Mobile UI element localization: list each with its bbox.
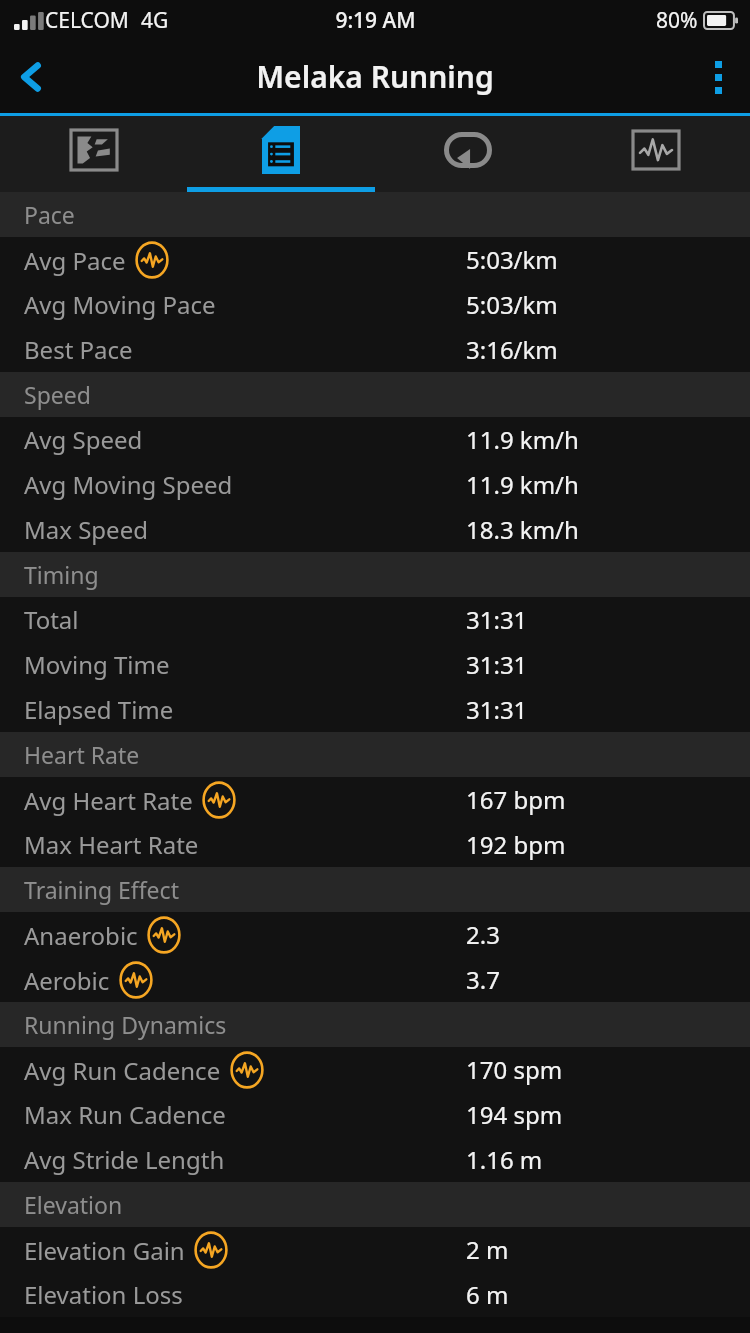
button[interactable]: Max Heart Rate xyxy=(0,822,750,867)
staticText: Melaka Running xyxy=(256,56,494,97)
staticText: 31:31 xyxy=(466,603,528,636)
button[interactable]: Elevation Gain xyxy=(0,1227,750,1272)
staticText: Avg Stride Length xyxy=(24,1143,225,1176)
staticText: Elevation Loss xyxy=(24,1278,183,1311)
staticText: 194 spm xyxy=(466,1098,563,1131)
staticText: 9:19 AM xyxy=(335,6,416,35)
staticText: Running Dynamics xyxy=(24,1009,227,1040)
staticText: Avg Heart Rate xyxy=(24,784,193,817)
staticText: 31:31 xyxy=(466,648,528,681)
button[interactable]: Moving Time xyxy=(0,642,750,687)
staticText: 170 spm xyxy=(466,1053,563,1086)
staticText: Timing xyxy=(24,559,99,590)
staticText: Aerobic xyxy=(24,964,110,997)
staticText: 5:03/km xyxy=(466,243,558,276)
staticText: 3.7 xyxy=(466,963,500,996)
button[interactable]: Avg Pace xyxy=(0,237,750,282)
staticText: 18.3 km/h xyxy=(466,513,579,546)
staticText: 4G xyxy=(141,6,169,35)
button[interactable]: Details xyxy=(187,116,374,192)
staticText: Elevation Gain xyxy=(24,1234,185,1267)
button[interactable]: Best Pace xyxy=(0,327,750,372)
button[interactable]: Max Run Cadence xyxy=(0,1092,750,1137)
staticText: Avg Run Cadence xyxy=(24,1054,221,1087)
button[interactable]: Laps xyxy=(374,116,562,192)
button[interactable]: Avg Heart Rate xyxy=(0,777,750,822)
staticText: Elevation xyxy=(24,1189,123,1220)
button[interactable]: Map xyxy=(0,116,187,192)
staticText: Avg Pace xyxy=(24,244,126,277)
button[interactable]: Avg Stride Length xyxy=(0,1137,750,1182)
staticText: Training Effect xyxy=(24,874,179,905)
staticText: 2 m xyxy=(466,1233,509,1266)
staticText: 80% xyxy=(656,6,698,35)
staticText: Max Speed xyxy=(24,513,148,546)
staticText: Avg Moving Pace xyxy=(24,288,216,321)
staticText: Moving Time xyxy=(24,648,170,681)
staticText: Total xyxy=(24,603,79,636)
button[interactable]: Back xyxy=(0,45,64,109)
staticText: Max Run Cadence xyxy=(24,1098,226,1131)
staticText: 1.16 m xyxy=(466,1143,543,1176)
staticText: 11.9 km/h xyxy=(466,468,579,501)
button[interactable]: Avg Moving Speed xyxy=(0,462,750,507)
button[interactable]: Avg Speed xyxy=(0,417,750,462)
staticText: 5:03/km xyxy=(466,288,558,321)
staticText: 167 bpm xyxy=(466,783,566,816)
button[interactable]: Elapsed Time xyxy=(0,687,750,732)
button[interactable]: Charts xyxy=(562,116,750,192)
staticText: CELCOM xyxy=(45,6,129,35)
staticText: 31:31 xyxy=(466,693,528,726)
button[interactable]: More options xyxy=(686,45,750,109)
staticText: Speed xyxy=(24,379,91,410)
staticText: Heart Rate xyxy=(24,739,140,770)
staticText: Max Heart Rate xyxy=(24,828,199,861)
staticText: 6 m xyxy=(466,1278,509,1311)
staticText: 2.3 xyxy=(466,918,500,951)
staticText: 192 bpm xyxy=(466,828,566,861)
staticText: Elapsed Time xyxy=(24,693,174,726)
button[interactable]: Aerobic xyxy=(0,957,750,1002)
staticText: Anaerobic xyxy=(24,919,138,952)
button[interactable]: Total xyxy=(0,597,750,642)
staticText: 11.9 km/h xyxy=(466,423,579,456)
button[interactable]: Max Speed xyxy=(0,507,750,552)
staticText: Best Pace xyxy=(24,333,133,366)
staticText: Avg Moving Speed xyxy=(24,468,233,501)
button[interactable]: Avg Moving Pace xyxy=(0,282,750,327)
button[interactable]: Elevation Loss xyxy=(0,1272,750,1317)
button[interactable]: Avg Run Cadence xyxy=(0,1047,750,1092)
staticText: Avg Speed xyxy=(24,423,143,456)
button[interactable]: Anaerobic xyxy=(0,912,750,957)
staticText: 3:16/km xyxy=(466,333,558,366)
staticText: Pace xyxy=(24,199,75,230)
